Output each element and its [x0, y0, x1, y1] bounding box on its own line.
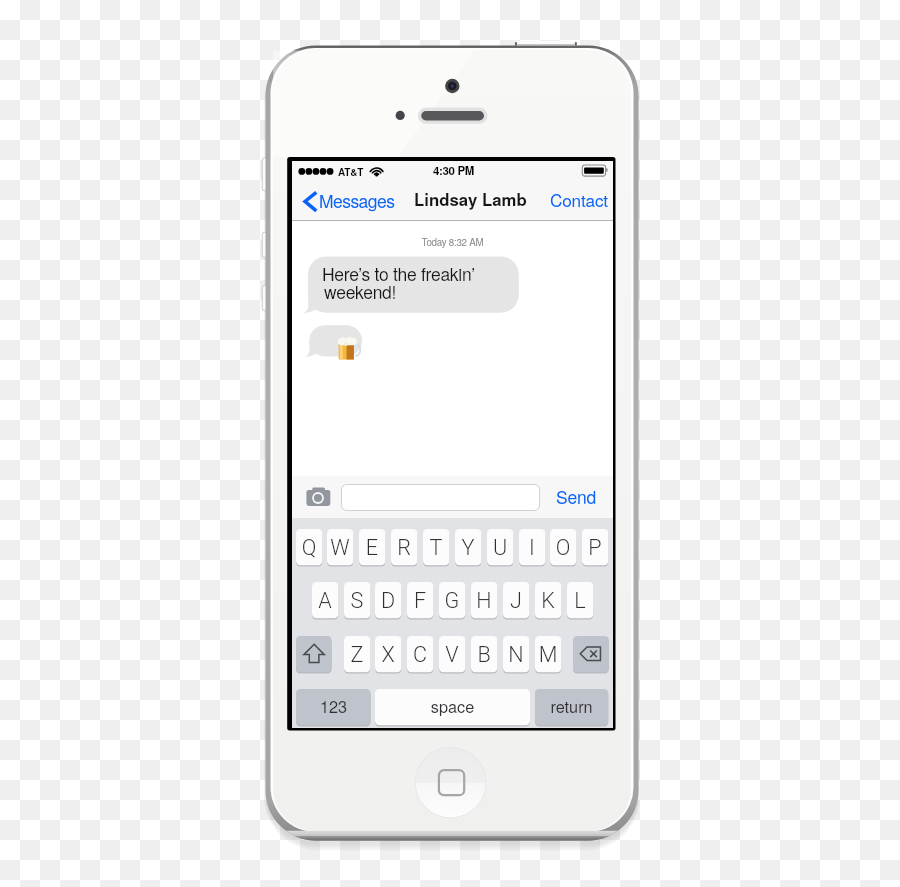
- staticText: Today 8:32 AM: [292, 235, 613, 249]
- button[interactable]: I: [519, 529, 545, 566]
- button[interactable]: V: [439, 636, 465, 673]
- staticText: Here’s to the freakin’: [322, 261, 475, 286]
- button[interactable]: Q: [296, 529, 322, 566]
- button[interactable]: M: [535, 636, 561, 673]
- staticText: Y: [455, 535, 481, 560]
- staticText: weekend!: [324, 279, 397, 304]
- staticText: M: [535, 642, 561, 667]
- staticText: Messages: [319, 188, 395, 213]
- button[interactable]: L: [567, 582, 593, 619]
- staticText: O: [550, 535, 576, 560]
- button[interactable]: Y: [455, 529, 481, 566]
- staticText: P: [582, 535, 608, 560]
- button[interactable]: Contact: [545, 187, 609, 217]
- button[interactable]: 123: [296, 689, 371, 726]
- staticText: K: [535, 588, 561, 613]
- staticText: space: [375, 694, 530, 717]
- button[interactable]: X: [375, 636, 401, 673]
- button[interactable]: F: [407, 582, 433, 619]
- button[interactable]: Z: [344, 636, 370, 673]
- staticText: Lindsay Lamb: [414, 187, 527, 211]
- button[interactable]: D: [375, 582, 401, 619]
- staticText: 123: [296, 694, 371, 717]
- button[interactable]: J: [503, 582, 529, 619]
- staticText: Send: [556, 484, 596, 509]
- button[interactable]: H: [471, 582, 497, 619]
- staticText: AT&T: [338, 165, 364, 179]
- staticText: W: [327, 535, 353, 560]
- button[interactable]: Take photo or video: [303, 485, 333, 510]
- button[interactable]: Backspace: [573, 636, 609, 673]
- staticText: return: [535, 694, 608, 717]
- staticText: R: [391, 535, 417, 560]
- staticText: Z: [344, 642, 370, 667]
- button[interactable]: B: [471, 636, 497, 673]
- staticText: C: [407, 642, 433, 667]
- staticText: S: [344, 588, 370, 613]
- staticText: U: [487, 535, 513, 560]
- staticText: Q: [296, 535, 322, 560]
- staticText: V: [439, 642, 465, 667]
- staticText: D: [375, 588, 401, 613]
- staticText: Contact: [550, 187, 608, 212]
- button[interactable]: A: [312, 582, 338, 619]
- button[interactable]: Send: [548, 483, 604, 511]
- staticText: F: [407, 588, 433, 613]
- button[interactable]: [341, 484, 540, 511]
- button[interactable]: N: [503, 636, 529, 673]
- button[interactable]: space: [375, 689, 530, 726]
- button[interactable]: C: [407, 636, 433, 673]
- button[interactable]: return: [535, 689, 608, 726]
- button[interactable]: Messages: [298, 187, 400, 217]
- button[interactable]: K: [535, 582, 561, 619]
- staticText: N: [503, 642, 529, 667]
- staticText: H: [471, 588, 497, 613]
- staticText: X: [375, 642, 401, 667]
- staticText: I: [519, 535, 545, 560]
- staticText: G: [439, 588, 465, 613]
- staticText: E: [359, 535, 385, 560]
- button[interactable]: W: [327, 529, 353, 566]
- button[interactable]: R: [391, 529, 417, 566]
- button[interactable]: S: [344, 582, 370, 619]
- button[interactable]: O: [550, 529, 576, 566]
- button[interactable]: E: [359, 529, 385, 566]
- button[interactable]: Beer emoji message: [309, 325, 362, 356]
- staticText: L: [567, 588, 593, 613]
- staticText: B: [471, 642, 497, 667]
- button[interactable]: Shift: [296, 636, 332, 673]
- button[interactable]: G: [439, 582, 465, 619]
- button[interactable]: P: [582, 529, 608, 566]
- staticText: 4:30 PM: [293, 162, 614, 178]
- button[interactable]: U: [487, 529, 513, 566]
- staticText: T: [423, 535, 449, 560]
- button[interactable]: T: [423, 529, 449, 566]
- staticText: J: [503, 588, 529, 613]
- button[interactable]: Here’s to the freakin’: [308, 257, 519, 313]
- staticText: A: [312, 588, 338, 613]
